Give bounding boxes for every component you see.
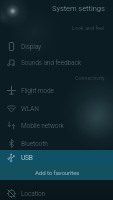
staticText: Sounds and feedback (21, 59, 81, 67)
staticText: Bluetooth (21, 140, 48, 148)
staticText: Connectivity (75, 75, 105, 81)
staticText: Flight mode (21, 87, 54, 95)
button[interactable]: WLAN (0, 100, 113, 117)
button[interactable]: Flight mode (0, 82, 113, 99)
button[interactable]: USB (0, 149, 113, 166)
staticText: System settings (52, 4, 105, 13)
button[interactable]: Add to favourites (0, 164, 113, 180)
button[interactable]: Bluetooth (0, 135, 113, 152)
staticText: USB (21, 154, 33, 162)
staticText: Add to favourites (35, 169, 80, 176)
staticText: WLAN (21, 105, 39, 113)
button[interactable]: System settings (0, 0, 113, 17)
staticText: Look and feel (72, 25, 105, 31)
staticText: Display (21, 43, 42, 51)
button[interactable]: Sounds and feedback (0, 54, 113, 71)
staticText: Location (21, 190, 46, 198)
button[interactable]: Mobile network (0, 117, 113, 134)
staticText: Mobile network (21, 122, 64, 130)
button[interactable]: Display (0, 38, 113, 55)
button[interactable]: Location (0, 185, 113, 200)
